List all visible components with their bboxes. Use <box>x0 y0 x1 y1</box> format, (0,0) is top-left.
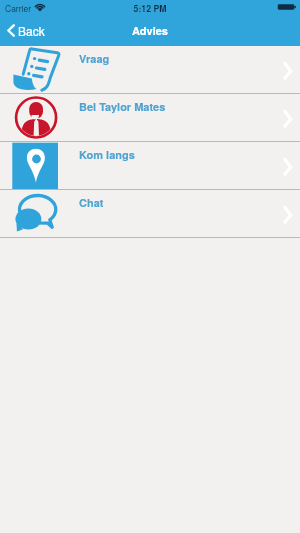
staticText: 5:12 PM <box>0 2 300 14</box>
staticText: Kom langs <box>79 147 135 163</box>
staticText: Carrier <box>5 2 31 14</box>
staticText: Back <box>18 22 45 39</box>
staticText: Bel Taylor Mates <box>79 99 166 115</box>
button[interactable]: Vraag <box>0 46 300 94</box>
staticText: Vraag <box>79 51 110 67</box>
button[interactable]: Chat <box>0 190 300 238</box>
staticText: Advies <box>0 23 300 39</box>
button[interactable]: Kom langs <box>0 142 300 190</box>
staticText: Chat <box>79 195 104 211</box>
button[interactable]: Back <box>0 19 53 42</box>
button[interactable]: Bel Taylor Mates <box>0 94 300 142</box>
